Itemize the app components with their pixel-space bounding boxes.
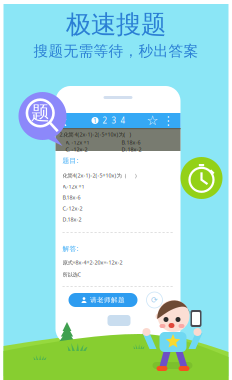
button[interactable]: Favourite — [146, 113, 158, 128]
button[interactable]: Back — [61, 113, 70, 128]
staticText: 请老师解题 — [90, 296, 125, 304]
staticText: A.-12x +1 — [62, 183, 84, 190]
staticText: C. -12x-2 — [65, 146, 87, 153]
staticText: 4 — [120, 115, 125, 126]
staticText: B. 18x-6 — [121, 139, 140, 146]
staticText: 2.化简 4(2x-1)-2(-5+10x)为( ) — [59, 131, 131, 138]
staticText: 题目: — [62, 156, 78, 165]
staticText: ‹ — [61, 109, 66, 132]
staticText: 3 — [111, 115, 116, 126]
staticText: 2 — [102, 115, 107, 126]
button[interactable]: 请老师解题 — [68, 293, 137, 307]
button[interactable]: Refresh — [146, 292, 162, 308]
staticText: 解答: — [62, 244, 78, 253]
staticText: ⋮ — [162, 114, 174, 127]
staticText: ☆ — [146, 113, 158, 128]
staticText: ⟳ — [151, 295, 158, 305]
staticText: 化简4(2x-1)-2(-5+10x)为（ ） — [62, 172, 139, 179]
staticText: 原式=8x-4+2-20x=-12x-2 — [62, 259, 122, 266]
staticText: 1 — [93, 116, 97, 125]
staticText: C.-12x-2 — [62, 205, 82, 212]
staticText: 题 — [31, 101, 50, 124]
staticText: B.18x-6 — [62, 194, 80, 201]
staticText: D.18x-2 — [62, 216, 81, 223]
staticText: 搜题无需等待，秒出答案 — [33, 42, 198, 60]
button[interactable]: More — [158, 114, 174, 127]
staticText: A. -12x +1 — [65, 139, 89, 146]
staticText: D. 18x-2 — [121, 146, 141, 153]
staticText: 所以选C — [62, 271, 80, 278]
staticText: 极速搜题 — [66, 9, 166, 40]
